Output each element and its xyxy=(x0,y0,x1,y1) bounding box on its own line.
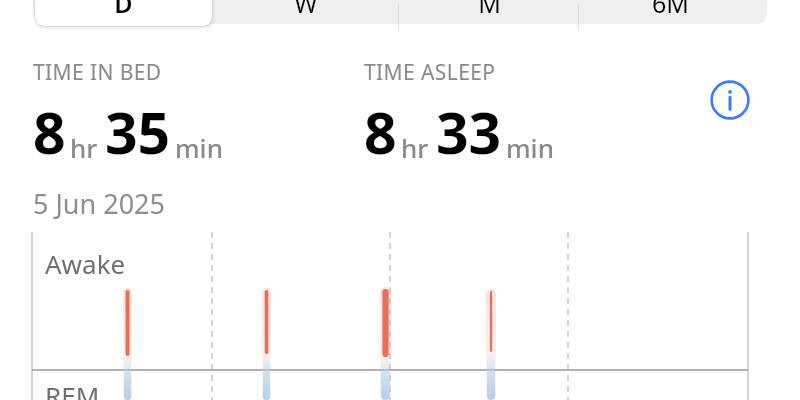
staticText: 35 xyxy=(105,93,171,171)
button[interactable]: 6M xyxy=(580,0,760,26)
staticText: REM xyxy=(45,378,100,400)
button[interactable]: Information about sleep data xyxy=(706,76,754,124)
button[interactable]: M xyxy=(399,0,579,26)
staticText: 8 xyxy=(33,93,66,171)
staticText: 5 Jun 2025 xyxy=(33,185,166,222)
staticText: D xyxy=(114,0,133,20)
staticText: TIME ASLEEP xyxy=(364,58,496,87)
staticText: 6M xyxy=(652,0,689,20)
staticText: TIME IN BED xyxy=(33,58,162,87)
staticText: 33 xyxy=(436,93,502,171)
staticText: hr xyxy=(401,130,429,165)
staticText: 8 xyxy=(364,93,397,171)
staticText: min xyxy=(175,130,223,165)
button[interactable]: D xyxy=(35,0,212,26)
button[interactable]: W xyxy=(216,0,396,26)
staticText: M xyxy=(478,0,501,20)
staticText: hr xyxy=(70,130,98,165)
button[interactable] xyxy=(35,0,212,26)
staticText: W xyxy=(294,0,318,20)
staticText: Awake xyxy=(45,246,126,281)
staticText: min xyxy=(506,130,554,165)
